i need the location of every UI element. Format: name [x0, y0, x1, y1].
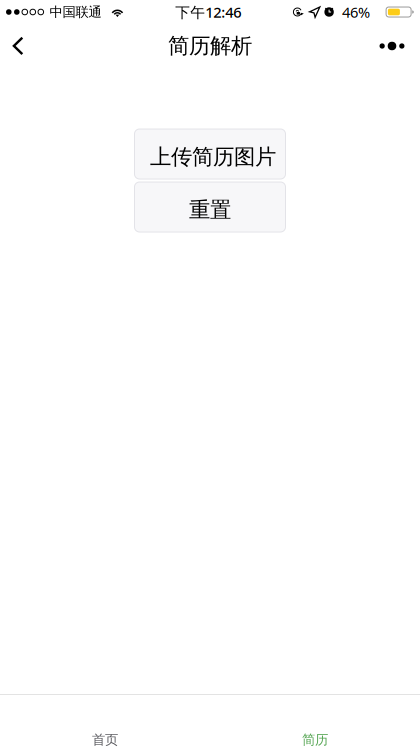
staticText: 简历 [302, 732, 328, 748]
button[interactable]: More options [371, 24, 413, 68]
button[interactable]: 首页 [0, 695, 210, 748]
button[interactable]: Back [0, 24, 36, 68]
staticText: 中国联通 [50, 4, 102, 20]
button[interactable]: 重置 [134, 182, 285, 232]
staticText: 下午12:46 [175, 2, 241, 22]
staticText: 46% [342, 2, 370, 22]
staticText: 首页 [92, 732, 118, 748]
button[interactable]: 上传简历图片 [134, 129, 285, 179]
staticText: 重置 [189, 197, 231, 223]
staticText: 上传简历图片 [150, 144, 276, 170]
staticText: 简历解析 [168, 33, 252, 59]
button[interactable]: 简历 [210, 695, 420, 748]
